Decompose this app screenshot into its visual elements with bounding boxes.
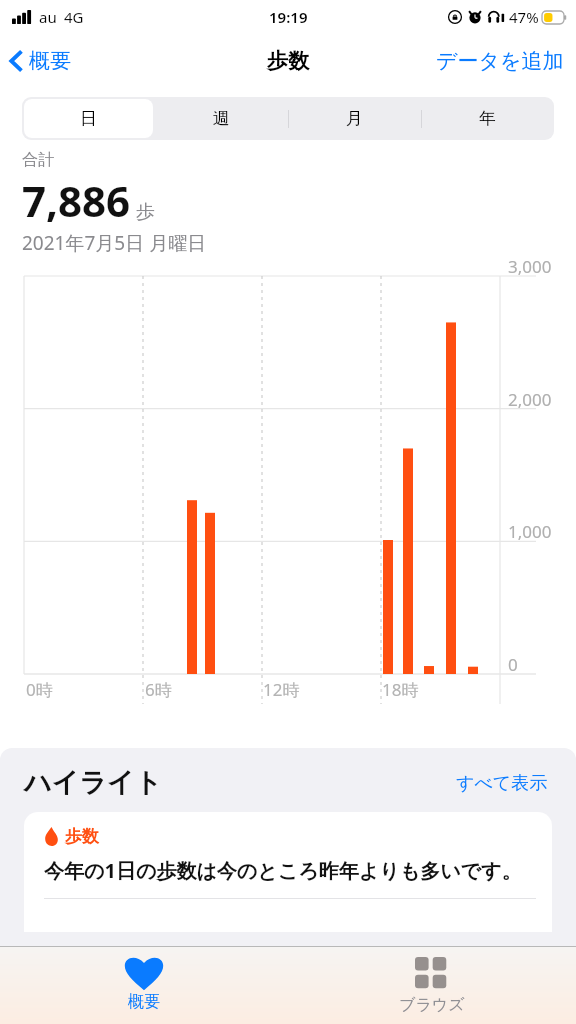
staticText: 7,886 — [22, 172, 131, 229]
button[interactable]: 年 — [421, 97, 554, 140]
staticText: au — [39, 7, 57, 27]
staticText: 47% — [509, 7, 539, 27]
staticText: データを追加 — [436, 48, 564, 74]
staticText: 歩 — [136, 200, 155, 224]
staticText: 0 — [508, 653, 518, 676]
staticText: ハイライト — [24, 766, 163, 800]
staticText: 年 — [479, 108, 496, 129]
staticText: 今年の1日の歩数は今のところ昨年よりも多いです。 — [44, 857, 522, 884]
button[interactable]: ブラウズ — [288, 947, 576, 1024]
staticText: 1,000 — [508, 520, 552, 543]
button[interactable]: 日 — [22, 97, 155, 140]
staticText: 歩数 — [267, 48, 309, 74]
staticText: すべて表示 — [456, 772, 548, 795]
staticText: 2,000 — [508, 388, 552, 411]
button[interactable]: すべて表示 — [452, 768, 552, 799]
staticText: 週 — [213, 108, 230, 129]
button[interactable]: 概要 — [0, 947, 288, 1024]
staticText: 日 — [80, 108, 97, 129]
button[interactable]: データを追加 — [424, 42, 576, 80]
staticText: 18時 — [382, 678, 419, 701]
staticText: 2021年7月5日 月曜日 — [22, 230, 207, 256]
staticText: 合計 — [22, 150, 54, 170]
staticText: 0時 — [26, 678, 53, 701]
staticText: 6時 — [145, 678, 172, 701]
staticText: 19:19 — [269, 7, 308, 27]
staticText: 歩数 — [65, 826, 99, 847]
staticText: 12時 — [263, 678, 300, 701]
staticText: 月 — [346, 108, 363, 129]
staticText: 4G — [64, 7, 84, 27]
button[interactable]: 概要 — [0, 42, 81, 80]
staticText: 概要 — [128, 992, 160, 1012]
button[interactable]: 週 — [155, 97, 288, 140]
button[interactable]: 月 — [288, 97, 421, 140]
staticText: ブラウズ — [399, 995, 465, 1015]
staticText: 3,000 — [508, 255, 552, 278]
button[interactable]: 歩数 — [24, 812, 552, 932]
staticText: 概要 — [29, 48, 71, 74]
